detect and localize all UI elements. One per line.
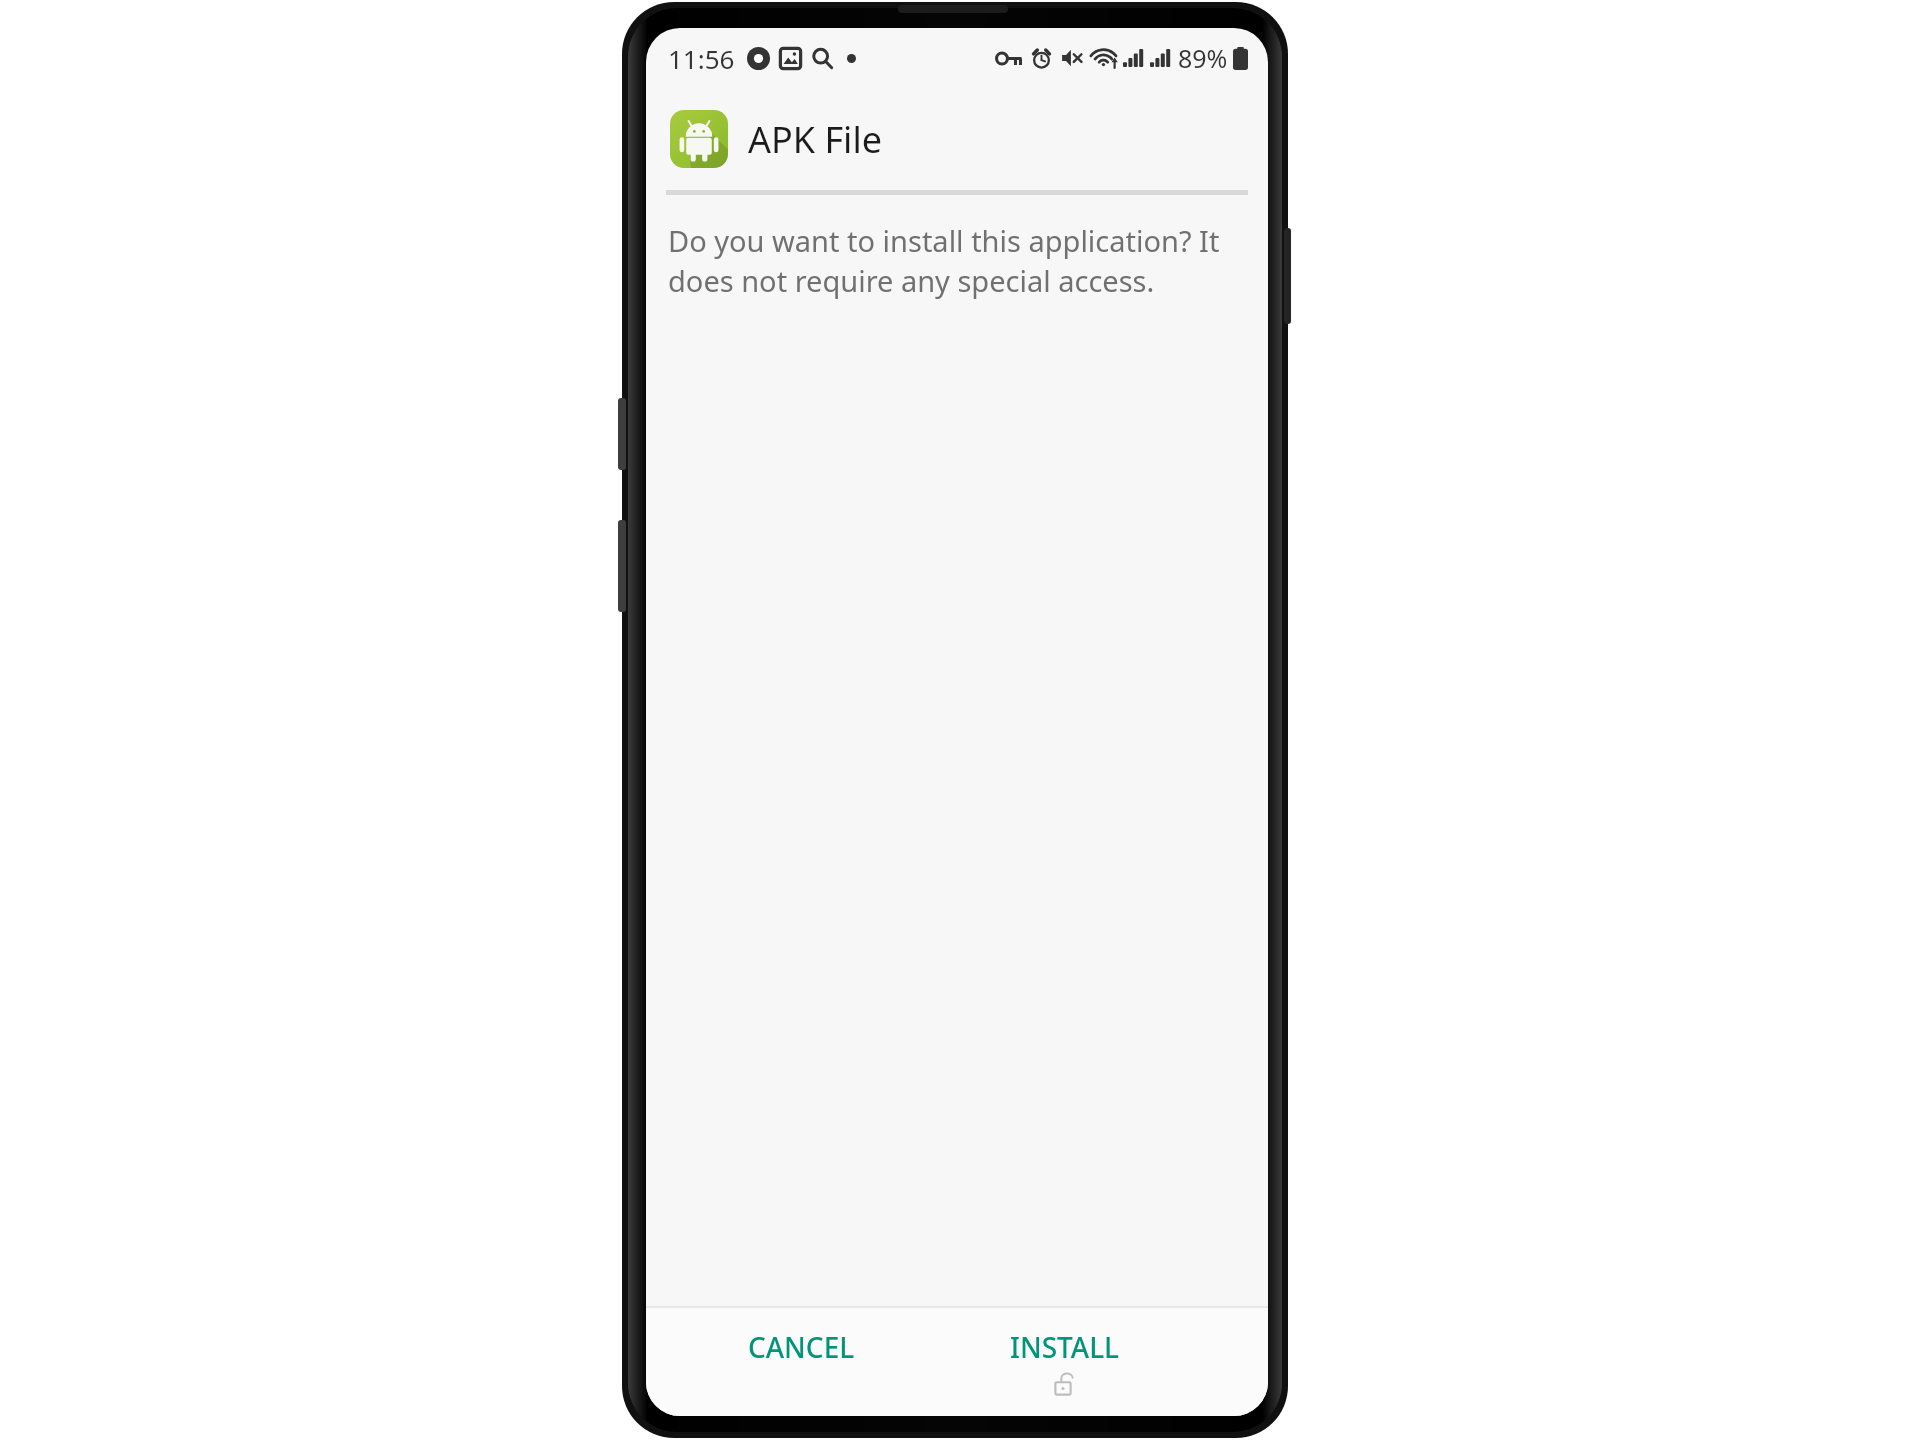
staticText: 11:56 [668,41,735,76]
staticText: CANCEL [748,1328,855,1366]
staticText: 89% [1178,41,1228,75]
other: Unlocked [1055,1373,1075,1396]
staticText: APK File [748,115,882,164]
button[interactable]: CANCEL [732,1316,871,1378]
staticText: INSTALL [1010,1328,1120,1366]
button[interactable]: INSTALL [994,1316,1136,1408]
staticText: Do you want to install this application?… [668,221,1246,301]
